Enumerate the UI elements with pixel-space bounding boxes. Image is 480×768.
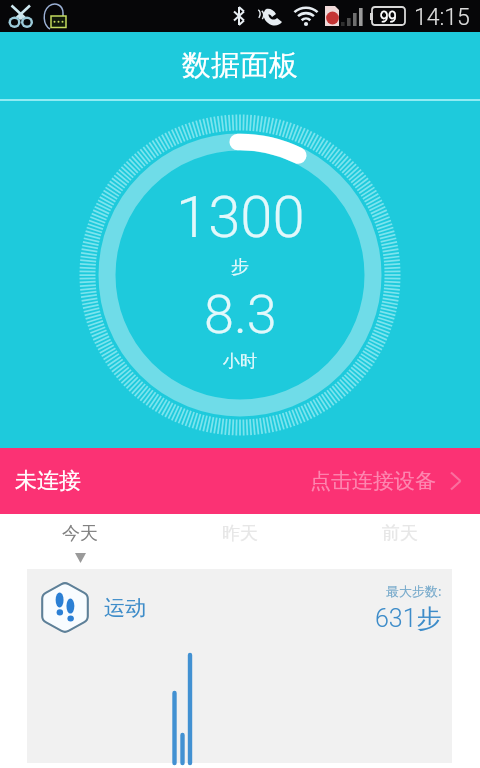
staticText: 99	[380, 8, 397, 25]
button[interactable]: 昨天	[160, 514, 320, 569]
button[interactable]: 运动	[27, 569, 452, 763]
staticText: 前天	[382, 522, 418, 545]
button[interactable]: 未连接	[0, 448, 480, 514]
other: 连接设备	[449, 468, 465, 494]
staticText: 昨天	[222, 522, 258, 545]
staticText: 最大步数:	[386, 582, 442, 600]
other: 运动	[41, 581, 89, 634]
staticText: 小时	[223, 351, 257, 372]
button[interactable]: 数据面板	[0, 32, 480, 99]
button[interactable]: 今天	[0, 514, 160, 569]
staticText: 运动	[104, 595, 146, 621]
staticText: 8.3	[204, 283, 277, 346]
staticText: 数据面板	[182, 47, 298, 84]
staticText: 点击连接设备	[310, 468, 436, 494]
staticText: 14:15	[414, 4, 470, 31]
button[interactable]: 前天	[320, 514, 480, 569]
staticText: 步	[231, 256, 249, 279]
staticText: 未连接	[15, 467, 81, 495]
staticText: 今天	[62, 522, 98, 545]
staticText: 631步	[375, 603, 442, 634]
staticText: 1300	[176, 183, 305, 251]
